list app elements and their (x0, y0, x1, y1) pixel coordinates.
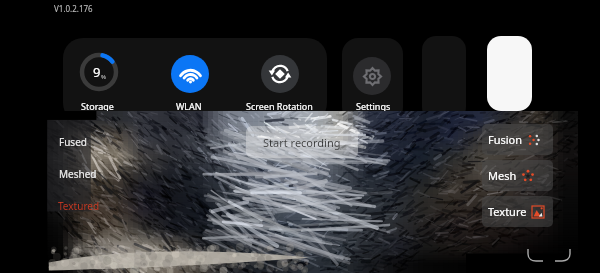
button[interactable]: Settings tile (342, 38, 403, 123)
staticText: V1.0.2.176 (54, 3, 93, 14)
button[interactable]: Settings (353, 57, 391, 95)
staticText: Start recording (263, 135, 341, 150)
staticText: Mesh (488, 168, 517, 183)
button[interactable]: Quick settings (63, 38, 327, 123)
button[interactable]: Textured (58, 199, 100, 213)
button[interactable]: Start recording (246, 126, 358, 158)
button[interactable]: Mesh (482, 160, 553, 191)
staticText: Screen Rotation (246, 100, 313, 112)
button[interactable]: Brightness (487, 36, 532, 111)
button[interactable]: Screen Rotation (261, 55, 299, 93)
staticText: Texture (488, 204, 527, 219)
button[interactable]: Fused (59, 135, 87, 149)
button[interactable]: Storage (79, 52, 119, 92)
button[interactable]: Texture (482, 196, 553, 227)
staticText: Fusion (488, 132, 523, 147)
staticText: 9 (93, 63, 101, 81)
staticText: % (101, 73, 106, 81)
staticText: WLAN (176, 100, 202, 112)
staticText: Storage (81, 100, 114, 112)
staticText: Settings (356, 100, 391, 112)
button[interactable]: Undo (524, 243, 546, 265)
button[interactable]: WLAN (171, 55, 209, 93)
button[interactable]: Meshed (59, 167, 97, 181)
button[interactable]: Redo (552, 243, 574, 265)
button[interactable]: Fusion (482, 124, 553, 155)
